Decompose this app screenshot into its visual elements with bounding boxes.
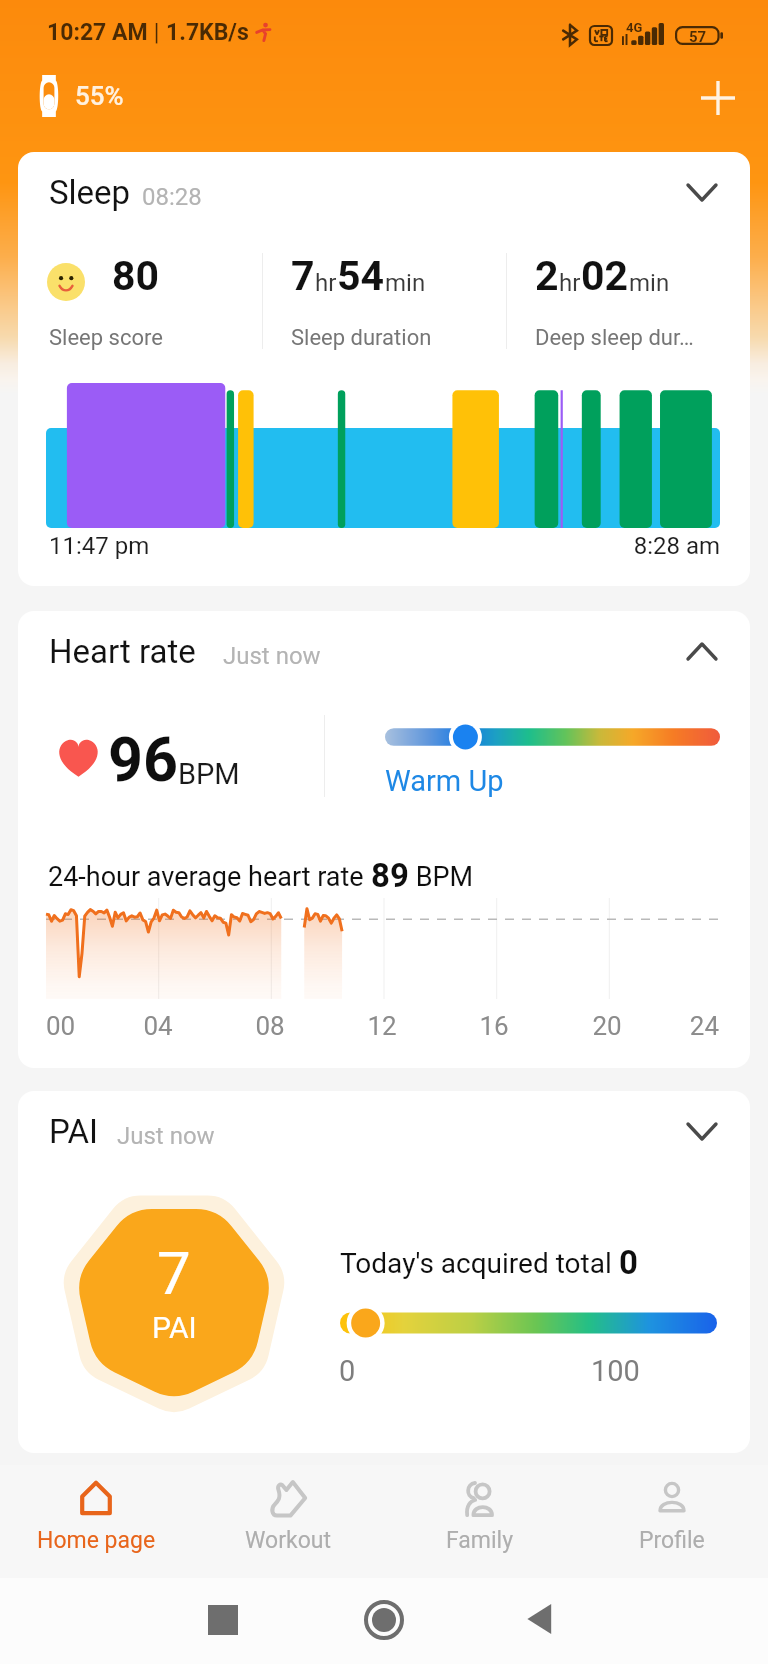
staticText: Sleep score <box>49 325 163 351</box>
staticText: Heart rate <box>49 632 196 671</box>
staticText: hr <box>315 269 337 297</box>
staticText: 08 <box>230 1011 310 1041</box>
staticText: 12 <box>342 1011 422 1041</box>
button[interactable]: Expand <box>674 164 730 220</box>
staticText: Sleep <box>49 173 131 212</box>
staticText: 11:47 pm <box>49 532 150 560</box>
staticText: 00 <box>46 1011 126 1041</box>
staticText: Home page <box>37 1527 156 1554</box>
staticText: min <box>629 269 670 297</box>
button[interactable]: Heart rate <box>18 611 750 1068</box>
button[interactable]: Home page <box>0 1465 192 1578</box>
staticText: hr <box>559 269 581 297</box>
staticText: Just now <box>117 1122 215 1150</box>
staticText: 80 <box>112 252 160 300</box>
staticText: BPM <box>178 757 240 791</box>
button[interactable]: Sleep <box>18 152 750 586</box>
staticText: 24-hour average heart rate <box>48 861 371 893</box>
staticText: min <box>385 269 426 297</box>
staticText: 2 <box>535 252 559 300</box>
button[interactable]: Add device <box>690 70 746 126</box>
staticText: 55% <box>75 81 124 111</box>
button[interactable]: Workout <box>192 1465 384 1578</box>
staticText: 96 <box>108 724 178 795</box>
staticText: 89 <box>371 856 409 895</box>
staticText: Profile <box>639 1527 705 1554</box>
staticText: 8:28 am <box>598 532 720 560</box>
staticText: Today's acquired total <box>340 1247 619 1280</box>
staticText: Deep sleep dur… <box>535 325 694 351</box>
staticText: 08:28 <box>142 183 202 211</box>
staticText: 20 <box>567 1011 647 1041</box>
staticText: 10:27 AM <box>47 19 148 46</box>
staticText: 57 <box>689 28 707 46</box>
staticText: 02 <box>581 252 629 300</box>
button[interactable]: PAI <box>18 1091 750 1453</box>
button[interactable]: Profile <box>576 1465 768 1578</box>
staticText: 0 <box>339 1354 356 1388</box>
staticText: 7 <box>157 1238 191 1308</box>
button[interactable]: Collapse <box>674 623 730 679</box>
staticText: Family <box>446 1527 514 1554</box>
button[interactable]: Expand <box>674 1103 730 1159</box>
staticText: 54 <box>337 252 385 300</box>
staticText: 16 <box>454 1011 534 1041</box>
staticText: | <box>148 19 166 46</box>
staticText: Workout <box>245 1527 331 1554</box>
staticText: 24 <box>639 1011 719 1041</box>
button[interactable]: 55% <box>34 71 130 121</box>
staticText: PAI <box>49 1112 99 1151</box>
staticText: 7 <box>291 252 315 300</box>
staticText: 1.7KB/s <box>166 19 249 46</box>
staticText: PAI <box>152 1310 197 1345</box>
button[interactable]: Family <box>384 1465 576 1578</box>
staticText: Warm Up <box>385 764 504 798</box>
staticText: 0 <box>619 1243 638 1282</box>
staticText: Just now <box>223 642 321 670</box>
staticText: 100 <box>591 1354 640 1388</box>
staticText: Sleep duration <box>291 325 432 351</box>
staticText: 04 <box>118 1011 198 1041</box>
staticText: BPM <box>409 861 474 893</box>
staticText: 4G <box>626 20 643 35</box>
